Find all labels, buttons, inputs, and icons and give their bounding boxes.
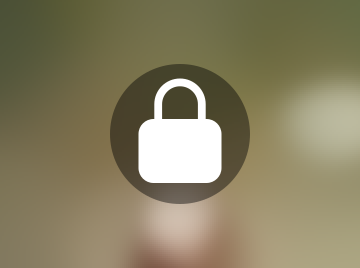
button[interactable]: Locked <box>0 0 360 268</box>
